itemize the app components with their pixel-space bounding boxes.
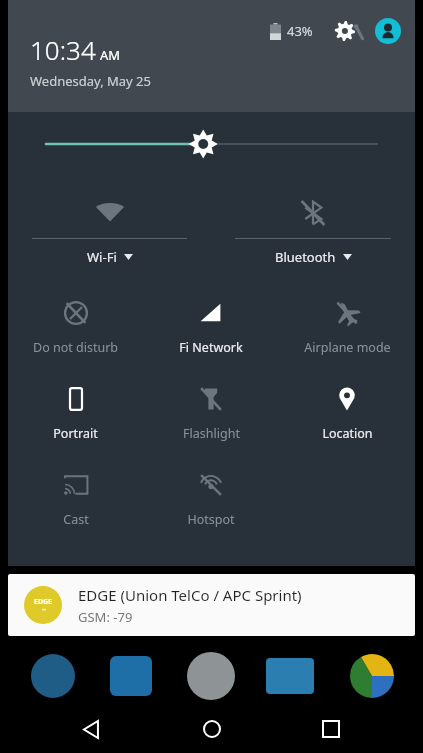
staticText: Wednesday, May 25 (30, 72, 151, 90)
button[interactable]: Back (64, 705, 120, 753)
button[interactable]: Airplane mode (279, 296, 415, 358)
button[interactable]: Cast (8, 468, 143, 530)
staticText: EDGE (34, 597, 53, 607)
staticText: Do not disturb (33, 339, 118, 356)
staticText: Location (322, 425, 373, 442)
button[interactable]: Settings (333, 14, 367, 48)
staticText: Airplane mode (304, 339, 391, 356)
staticText: 43% (287, 22, 313, 40)
staticText: AM (100, 46, 121, 64)
button[interactable]: Do not disturb (8, 296, 143, 358)
button[interactable]: Flashlight (143, 382, 279, 444)
staticText: Hotspot (187, 511, 235, 528)
staticText: EDGE (Union TelCo / APC Sprint) (78, 585, 302, 605)
staticText: •• (42, 607, 46, 614)
button[interactable]: 10:34 (30, 32, 151, 90)
button[interactable]: Location (279, 382, 415, 444)
button[interactable]: Recent apps (303, 705, 359, 753)
staticText: Cast (63, 511, 89, 528)
staticText: Bluetooth (275, 248, 336, 266)
button[interactable]: Portrait (8, 382, 143, 444)
button[interactable]: Wi-Fi (32, 196, 187, 270)
staticText: 10:34 (30, 32, 96, 67)
staticText: GSM: -79 (78, 608, 133, 626)
button[interactable]: Home (184, 705, 240, 753)
staticText: Fi Network (179, 339, 243, 356)
button[interactable]: EDGE (8, 574, 415, 636)
staticText: Wi-Fi (87, 248, 117, 266)
button[interactable]: Hotspot (143, 468, 279, 530)
button[interactable]: Brightness (8, 118, 415, 170)
button[interactable]: User profile (375, 18, 401, 44)
button[interactable]: Bluetooth (235, 196, 391, 270)
staticText: Flashlight (183, 425, 240, 442)
button[interactable]: Fi Network (143, 296, 279, 358)
staticText: Portrait (53, 425, 98, 442)
